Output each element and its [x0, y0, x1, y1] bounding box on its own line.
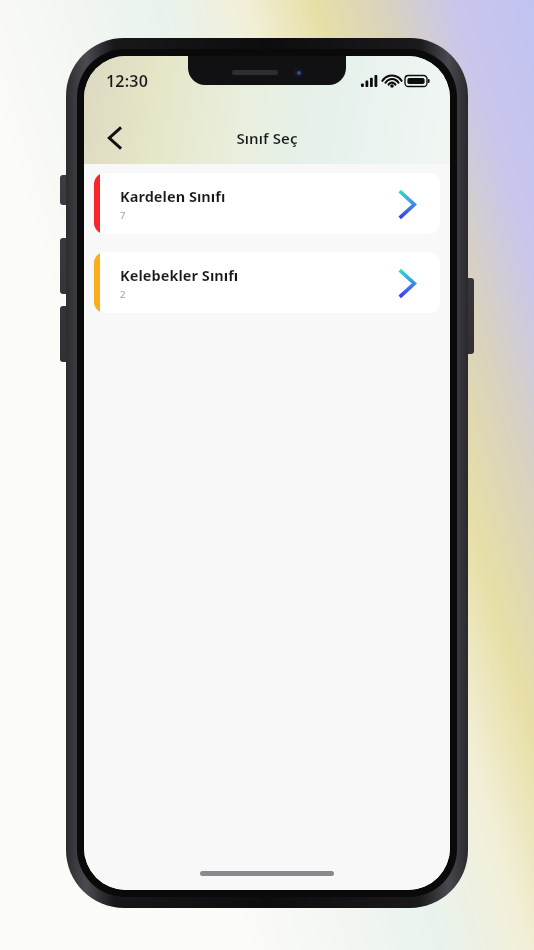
staticText: 7 [120, 209, 126, 222]
other: Sınıfı aç [390, 266, 424, 300]
button[interactable]: Geri [90, 114, 138, 162]
staticText: Kelebekler Sınıfı [120, 265, 239, 285]
staticText: Kardelen Sınıfı [120, 186, 226, 206]
staticText: 12:30 [106, 70, 149, 92]
button[interactable]: Kardelen Sınıfı [94, 173, 440, 234]
staticText: Sınıf Seç [236, 128, 298, 148]
button[interactable]: Kelebekler Sınıfı [94, 252, 440, 313]
other: Sınıfı aç [390, 187, 424, 221]
staticText: 2 [120, 288, 126, 301]
